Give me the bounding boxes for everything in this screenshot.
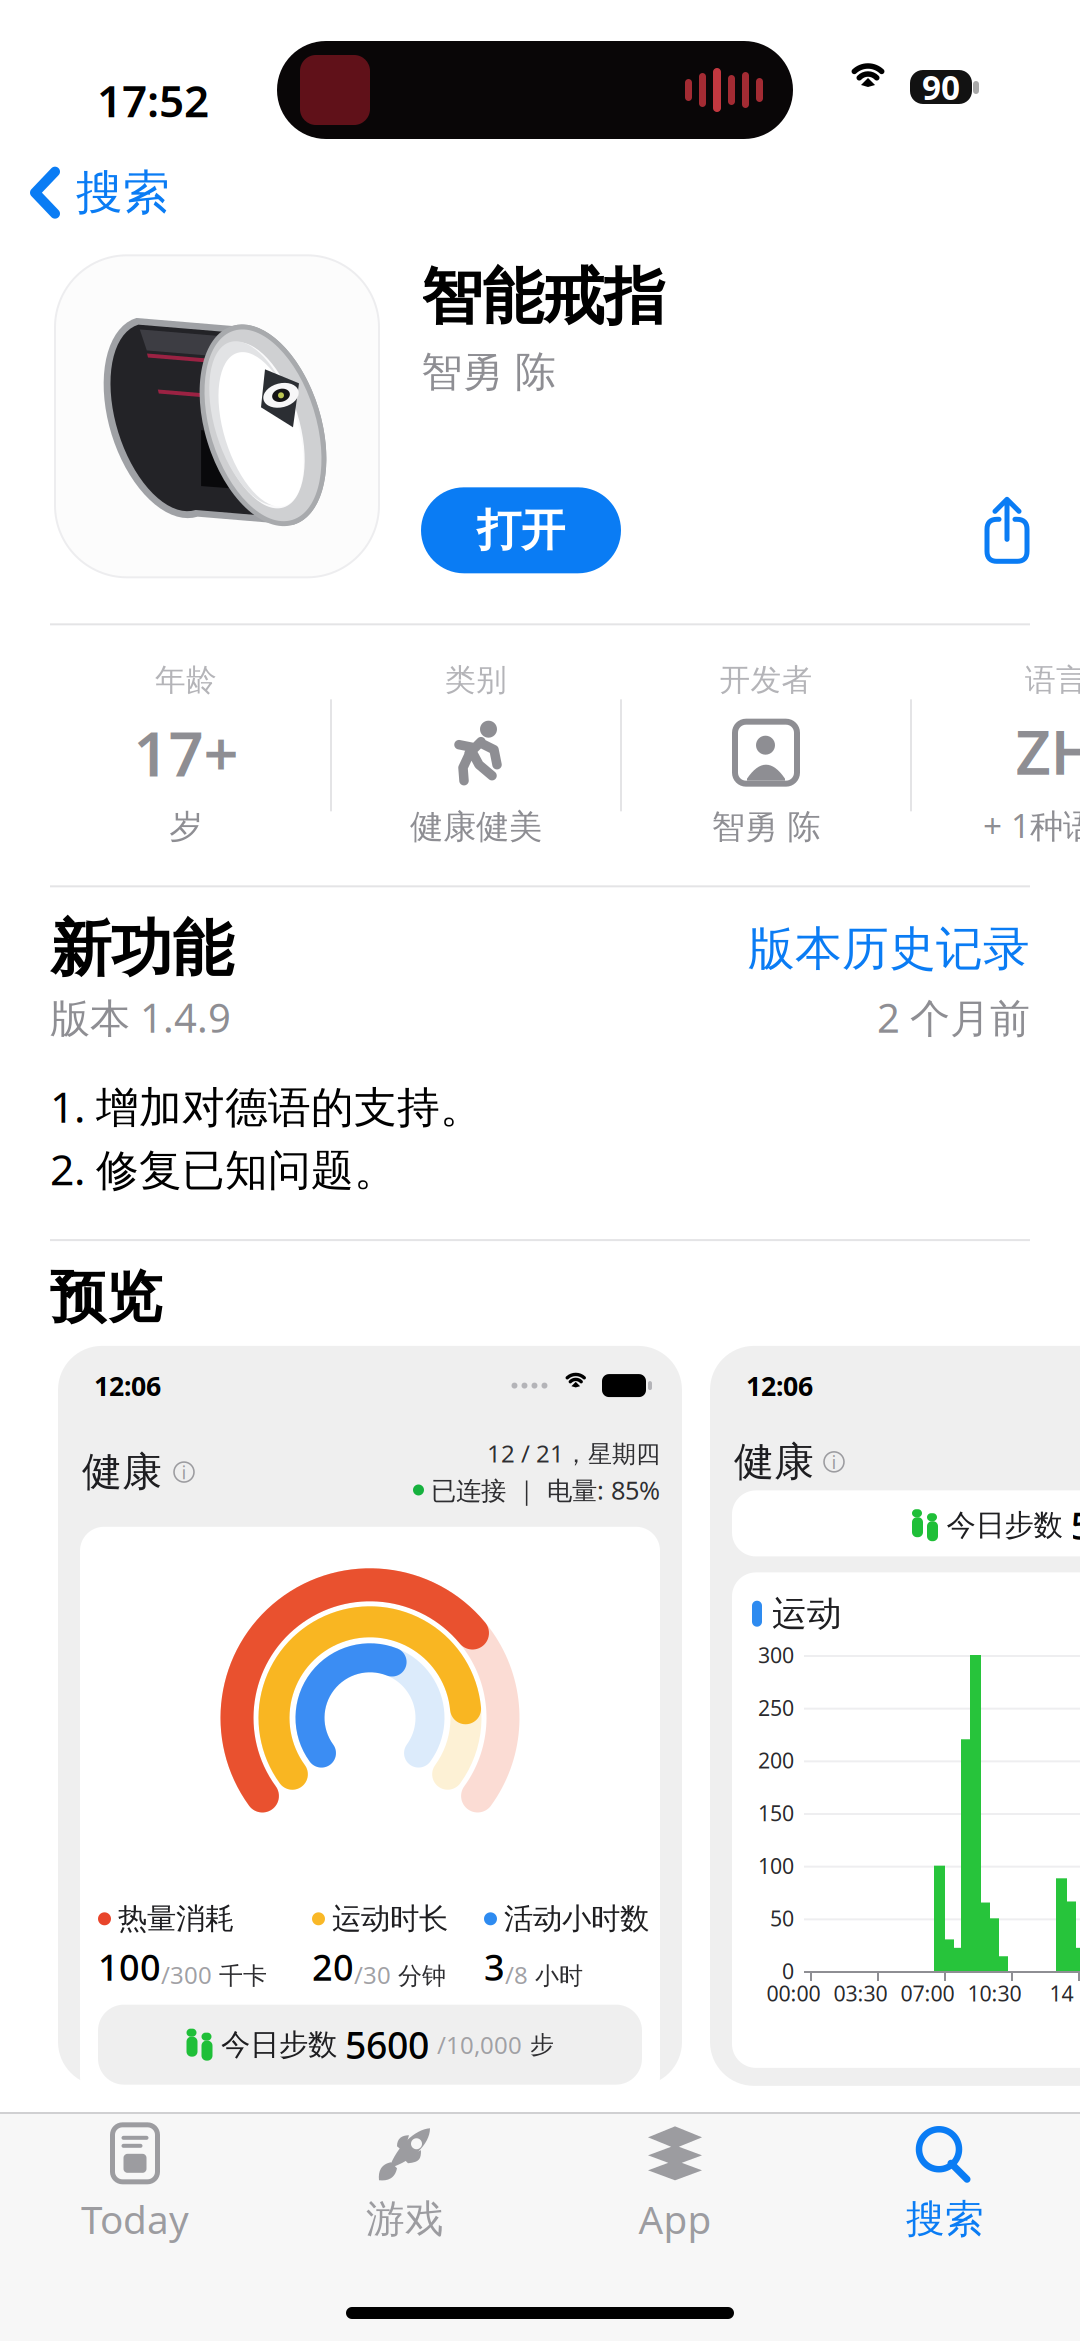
staticText: 健康 — [82, 1447, 162, 1497]
staticText: /300 — [161, 1959, 212, 1991]
staticText: Today — [81, 2193, 189, 2245]
staticText: ZH — [1015, 710, 1080, 792]
staticText: /10,000 — [437, 2029, 522, 2061]
staticText: 07:00 — [900, 1979, 954, 2007]
staticText: 智能戒指 — [421, 259, 665, 335]
staticText: 类别 — [445, 661, 507, 699]
staticText: 17:52 — [97, 71, 209, 129]
staticText: 热量消耗 — [118, 1901, 234, 1937]
staticText: 打开 — [477, 503, 565, 557]
staticText: 游戏 — [366, 2195, 444, 2243]
staticText: 智勇 陈 — [421, 347, 556, 397]
staticText: App — [638, 2193, 711, 2245]
staticText: 250 — [758, 1693, 794, 1722]
staticText: 14 — [1049, 1979, 1073, 2007]
staticText: 300 — [758, 1641, 794, 1669]
staticText: 开发者 — [719, 661, 812, 699]
staticText: 千卡 — [212, 1961, 267, 1991]
button[interactable]: Today — [0, 2114, 270, 2254]
button[interactable]: 搜索 — [0, 152, 190, 233]
staticText: 已连接 ｜ 电量: 85% — [431, 1473, 660, 1507]
staticText: 5600 — [345, 2020, 429, 2069]
staticText: 语言 — [1025, 661, 1080, 699]
button[interactable]: 搜索 — [810, 2114, 1080, 2254]
staticText: + 1种语言 — [983, 803, 1080, 847]
staticText: 今日步数 — [946, 1507, 1062, 1543]
staticText: 智勇 陈 — [711, 806, 820, 847]
staticText: 分钟 — [391, 1961, 446, 1991]
button[interactable]: App — [540, 2114, 810, 2254]
staticText: 2. 修复已知问题。 — [50, 1140, 397, 1197]
staticText: 年龄 — [155, 661, 217, 699]
staticText: 200 — [758, 1746, 794, 1774]
staticText: 03:30 — [833, 1979, 887, 2007]
staticText: 20 — [312, 1943, 354, 1991]
staticText: 12:06 — [746, 1368, 813, 1403]
button[interactable]: 游戏 — [270, 2114, 540, 2254]
staticText: 搜索 — [906, 2195, 984, 2243]
staticText: 岁 — [169, 806, 202, 847]
staticText: 0 — [782, 1957, 794, 1985]
staticText: 活动小时数 — [504, 1901, 649, 1937]
staticText: /30 — [354, 1959, 391, 1991]
staticText: 1. 增加对德语的支持。 — [50, 1078, 483, 1134]
staticText: 步 — [530, 2030, 554, 2059]
staticText: /8 — [505, 1959, 528, 1991]
staticText: 100 — [98, 1943, 161, 1991]
staticText: 今日步数 — [221, 2027, 337, 2063]
staticText: 50 — [770, 1904, 794, 1932]
staticText: 90 — [922, 65, 960, 109]
staticText: 运动时长 — [332, 1901, 448, 1937]
staticText: 10:30 — [967, 1979, 1021, 2007]
staticText: i — [831, 1449, 836, 1474]
staticText: i — [181, 1460, 186, 1484]
staticText: 17+ — [133, 712, 238, 793]
staticText: 2 个月前 — [877, 991, 1030, 1044]
staticText: 新功能 — [50, 911, 233, 987]
button[interactable]: 打开 — [421, 487, 621, 573]
staticText: 版本历史记录 — [748, 920, 1030, 978]
staticText: 健康 — [734, 1437, 814, 1486]
staticText: 5600 — [1070, 1500, 1080, 1550]
staticText: 健康健美 — [410, 806, 542, 847]
staticText: 预览 — [50, 1263, 162, 1332]
staticText: 运动 — [772, 1592, 842, 1635]
staticText: 版本 1.4.9 — [50, 991, 231, 1044]
staticText: 150 — [758, 1799, 794, 1827]
staticText: 3 — [484, 1943, 505, 1991]
button[interactable]: 分享 — [972, 495, 1042, 565]
button[interactable]: 版本历史记录 — [748, 920, 1030, 978]
staticText: 搜索 — [76, 164, 170, 221]
staticText: 00:00 — [766, 1979, 820, 2007]
staticText: 12 / 21，星期四 — [487, 1437, 660, 1469]
staticText: 12:06 — [94, 1368, 161, 1403]
staticText: 小时 — [528, 1961, 583, 1991]
staticText: 100 — [758, 1851, 794, 1880]
